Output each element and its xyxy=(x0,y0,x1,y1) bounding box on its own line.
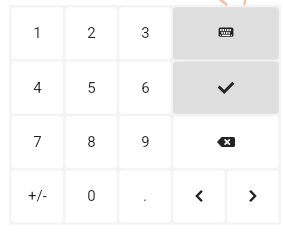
button[interactable]: 2 xyxy=(65,7,117,59)
staticText: 5 xyxy=(87,79,96,97)
staticText: 6 xyxy=(141,79,150,97)
staticText: +/- xyxy=(28,187,47,205)
button[interactable]: Previous field xyxy=(173,170,225,222)
button[interactable]: 6 xyxy=(119,62,171,114)
button[interactable]: 0 xyxy=(65,170,117,222)
staticText: 8 xyxy=(87,133,96,151)
staticText: 3 xyxy=(141,24,150,42)
staticText: . xyxy=(143,187,147,205)
staticText: 2 xyxy=(87,24,96,42)
button[interactable]: 8 xyxy=(65,116,117,168)
button[interactable]: Done xyxy=(173,62,279,114)
staticText: 4 xyxy=(33,79,42,97)
button[interactable]: 7 xyxy=(11,116,63,168)
button[interactable]: 4 xyxy=(11,62,63,114)
button[interactable]: 9 xyxy=(119,116,171,168)
button[interactable]: Next field xyxy=(227,170,279,222)
staticText: 0 xyxy=(87,187,96,205)
staticText: 9 xyxy=(141,133,150,151)
staticText: 7 xyxy=(33,133,42,151)
button[interactable]: 3 xyxy=(119,7,171,59)
button[interactable]: . xyxy=(119,170,171,222)
button[interactable]: Keyboard xyxy=(173,7,279,59)
button[interactable]: +/- xyxy=(11,170,63,222)
button[interactable]: 5 xyxy=(65,62,117,114)
button[interactable]: Backspace xyxy=(173,116,279,168)
staticText: 1 xyxy=(33,24,42,42)
button[interactable]: 1 xyxy=(11,7,63,59)
